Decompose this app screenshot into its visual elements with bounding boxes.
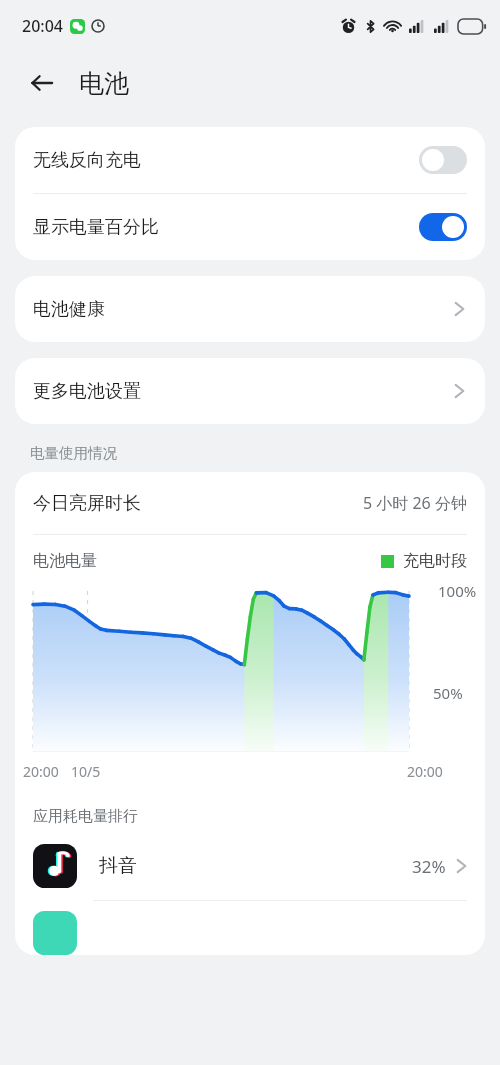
staticText: 应用耗电量排行 [33, 807, 138, 826]
staticText: 显示电量百分比 [33, 216, 419, 239]
staticText: 电池 [79, 68, 129, 99]
staticText: 今日亮屏时长 [33, 492, 363, 515]
button[interactable]: 抖音 [15, 840, 485, 900]
button[interactable]: 返回 [22, 63, 62, 103]
staticText: 电量使用情况 [30, 444, 117, 462]
button[interactable]: 电池健康 [15, 276, 485, 342]
button[interactable]: 更多电池设置 [15, 358, 485, 424]
staticText: 20:00 [407, 762, 443, 781]
staticText: 32% [412, 855, 446, 878]
staticText: 5 小时 26 分钟 [363, 492, 467, 514]
staticText: 电池健康 [33, 298, 454, 321]
staticText: 10/5 [71, 762, 101, 781]
button[interactable]: 无线反向充电 [15, 127, 485, 193]
staticText: 充电时段 [403, 551, 467, 571]
staticText: 无线反向充电 [33, 149, 419, 172]
staticText: 50% [433, 683, 463, 703]
button[interactable]: 显示电量百分比 [15, 194, 485, 260]
staticText: 抖音 [99, 854, 412, 878]
button[interactable] [15, 911, 485, 955]
staticText: 100% [438, 581, 477, 601]
staticText: 20:04 [22, 15, 63, 37]
staticText: 电池电量 [33, 551, 381, 571]
button[interactable]: 今日亮屏时长 [15, 472, 485, 534]
staticText: 更多电池设置 [33, 380, 454, 403]
staticText: 20:00 [23, 762, 59, 781]
